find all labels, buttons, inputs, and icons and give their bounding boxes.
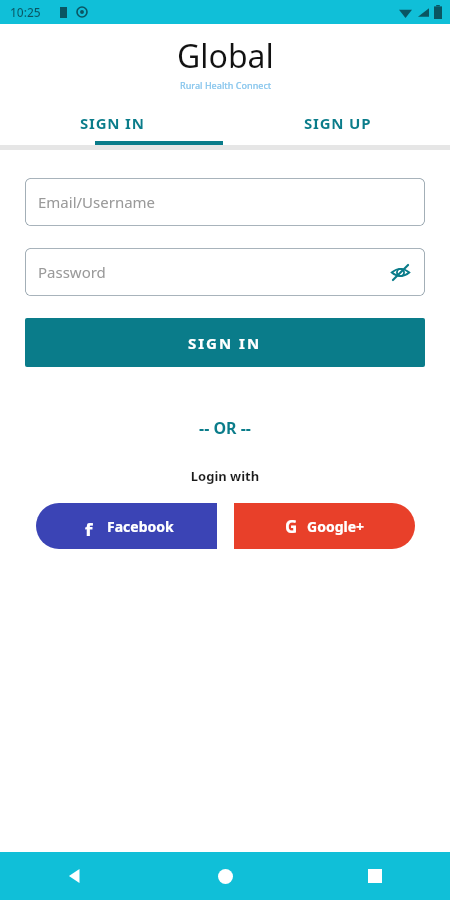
staticText: SIGN IN bbox=[188, 333, 262, 353]
staticText: 10:25 bbox=[10, 4, 41, 20]
button[interactable]: Show password bbox=[387, 259, 413, 285]
staticText: Login with bbox=[0, 467, 450, 485]
staticText: Password bbox=[38, 262, 106, 282]
button[interactable]: SIGN IN bbox=[25, 318, 425, 367]
staticText: Google+ bbox=[307, 517, 365, 536]
staticText: G bbox=[285, 515, 298, 538]
staticText: -- OR -- bbox=[0, 417, 450, 439]
staticText: SIGN UP bbox=[304, 113, 372, 133]
button[interactable]: SIGN UP bbox=[225, 100, 450, 145]
staticText: Facebook bbox=[107, 517, 174, 536]
button[interactable]: SIGN IN bbox=[0, 100, 225, 145]
button[interactable]: Recent apps bbox=[300, 852, 450, 900]
staticText: Rural Health Connect bbox=[180, 79, 272, 91]
staticText: Global bbox=[177, 34, 274, 78]
button[interactable]: Home bbox=[150, 852, 300, 900]
button[interactable]: Back bbox=[0, 852, 150, 900]
button[interactable]: Email/Username bbox=[25, 178, 425, 226]
button[interactable]: f bbox=[36, 503, 217, 549]
staticText: SIGN IN bbox=[80, 113, 145, 133]
button[interactable]: G bbox=[234, 503, 415, 549]
button[interactable]: Password bbox=[25, 248, 425, 296]
staticText: f bbox=[85, 518, 93, 536]
staticText: Email/Username bbox=[38, 192, 156, 212]
